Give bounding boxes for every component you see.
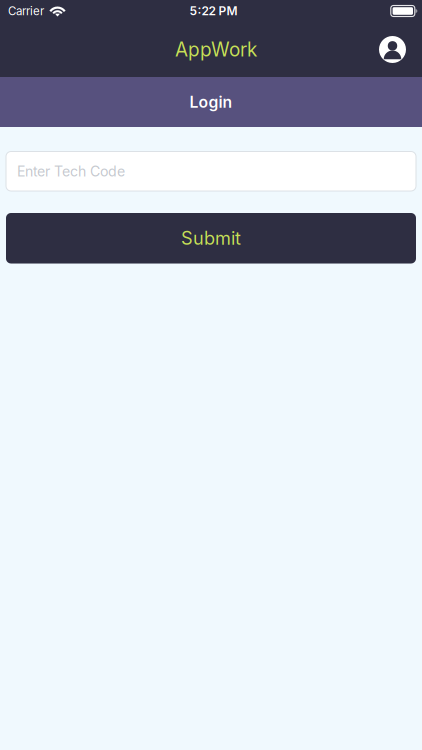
staticText: Login [189, 92, 232, 111]
staticText: Submit [181, 227, 241, 249]
button[interactable]: Submit [0, 213, 422, 263]
button[interactable]: Account [379, 36, 422, 63]
staticText: Enter Tech Code [17, 163, 125, 180]
staticText: 5:22 PM [189, 4, 237, 18]
staticText: Carrier [8, 4, 44, 18]
staticText: AppWork [175, 38, 257, 61]
